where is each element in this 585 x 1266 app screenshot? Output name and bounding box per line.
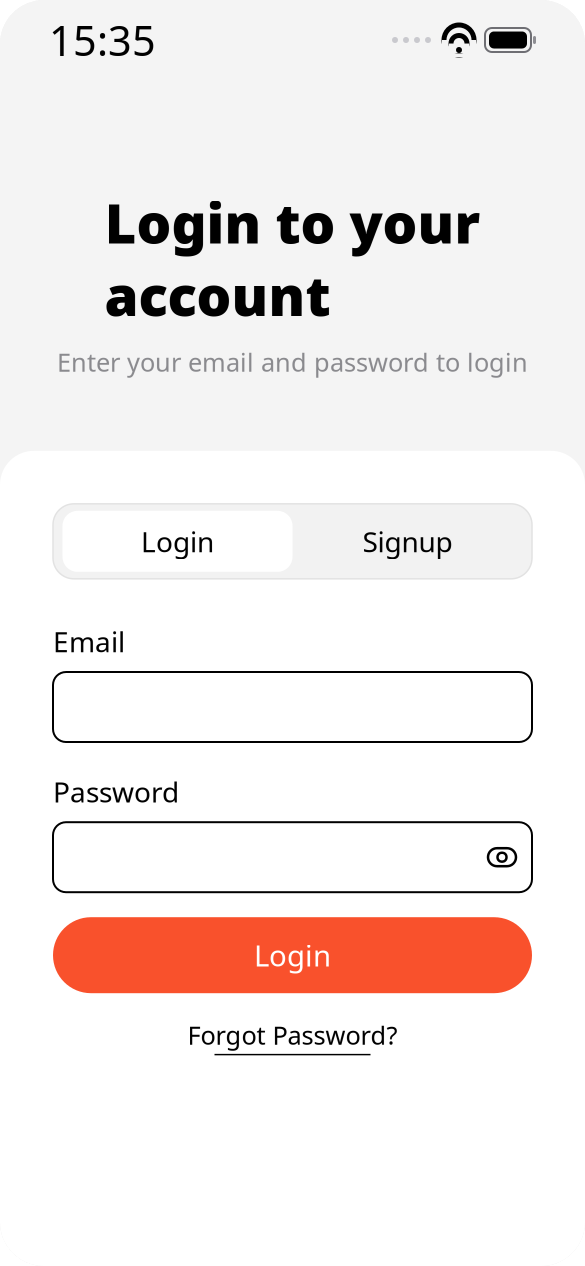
button[interactable]: Show password: [479, 834, 525, 880]
button[interactable]: Login: [62, 511, 292, 572]
button[interactable]: Login: [53, 917, 532, 993]
button[interactable]: Forgot Password?: [177, 1014, 407, 1059]
staticText: Password: [53, 773, 179, 810]
button[interactable]: Signup: [292, 511, 522, 572]
staticText: Login: [254, 936, 331, 975]
staticText: Enter your email and password to login: [57, 345, 528, 379]
staticText: Email: [53, 623, 125, 660]
staticText: Forgot Password?: [187, 1018, 397, 1052]
staticText: Signup: [362, 523, 452, 560]
staticText: 15:35: [49, 13, 156, 67]
staticText: Login to your account: [104, 186, 480, 331]
staticText: Login: [141, 523, 214, 560]
